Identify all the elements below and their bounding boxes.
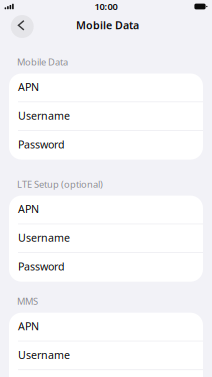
staticText: Mobile Data: [17, 56, 68, 68]
staticText: APN: [18, 202, 39, 216]
staticText: Password: [18, 259, 65, 273]
staticText: APN: [18, 319, 39, 333]
button[interactable]: APN: [9, 313, 203, 341]
staticText: Username: [18, 231, 70, 245]
button[interactable]: Username: [9, 224, 203, 253]
button[interactable]: Back: [10, 15, 34, 38]
button[interactable]: APN: [9, 73, 203, 102]
staticText: MMS: [17, 295, 38, 307]
staticText: 10:00: [94, 0, 117, 13]
staticText: Mobile Data: [76, 18, 139, 32]
button[interactable]: Password: [9, 253, 203, 282]
staticText: APN: [18, 80, 39, 94]
staticText: Username: [18, 108, 70, 123]
staticText: LTE Setup (optional): [17, 178, 103, 190]
staticText: Password: [18, 137, 65, 151]
staticText: Username: [18, 348, 70, 362]
button[interactable]: Password: [9, 131, 203, 160]
button[interactable]: Username: [9, 102, 203, 131]
button[interactable]: Username: [9, 341, 203, 370]
button[interactable]: APN: [9, 196, 203, 224]
